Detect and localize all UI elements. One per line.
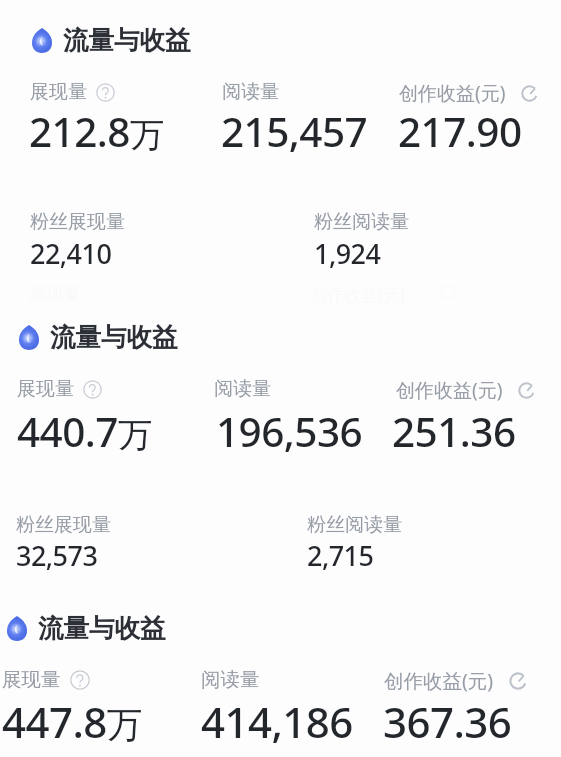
staticText: 流量与收益 xyxy=(38,612,166,644)
staticText: 251.36 xyxy=(392,404,516,459)
staticText: 粉丝阅读量 xyxy=(307,513,402,537)
staticText: 367.36 xyxy=(383,693,512,750)
staticText: 展现量 xyxy=(30,80,87,104)
staticText: 粉丝展现量 xyxy=(30,210,125,234)
staticText: 展现量 xyxy=(2,667,61,692)
staticText: 32,573 xyxy=(16,537,98,574)
staticText: 447.8万 xyxy=(2,693,142,750)
staticText: 阅读量 xyxy=(222,80,279,104)
staticText: 创作收益(元) xyxy=(384,667,494,694)
button[interactable]: Help xyxy=(83,380,102,399)
staticText: 阅读量 xyxy=(214,377,271,401)
staticText: 22,410 xyxy=(30,235,112,272)
staticText: 414,186 xyxy=(201,693,353,750)
button[interactable]: Help xyxy=(96,83,115,102)
staticText: 196,536 xyxy=(216,404,363,459)
button[interactable]: 流量与收益 xyxy=(7,612,166,644)
staticText: 创作收益(元) xyxy=(396,377,503,403)
staticText: 212.8万 xyxy=(29,104,164,159)
button[interactable]: Refresh xyxy=(508,671,528,691)
staticText: 1,924 xyxy=(314,235,381,272)
staticText: 创作收益(元) xyxy=(399,80,506,106)
button[interactable]: Refresh xyxy=(520,84,539,103)
staticText: 215,457 xyxy=(221,104,368,159)
staticText: 展现量 xyxy=(17,377,74,401)
button[interactable]: 流量与收益 xyxy=(19,321,178,353)
staticText: 217.90 xyxy=(398,104,522,159)
staticText: 2,715 xyxy=(307,537,374,574)
staticText: 粉丝展现量 xyxy=(16,513,111,537)
staticText: 阅读量 xyxy=(201,667,260,692)
staticText: 流量与收益 xyxy=(63,24,191,56)
button[interactable]: 流量与收益 xyxy=(32,24,191,56)
staticText: 流量与收益 xyxy=(50,321,178,353)
button[interactable]: Refresh xyxy=(517,381,536,400)
staticText: 粉丝阅读量 xyxy=(314,210,409,234)
button[interactable]: Help xyxy=(70,670,90,690)
staticText: 440.7万 xyxy=(17,404,152,459)
